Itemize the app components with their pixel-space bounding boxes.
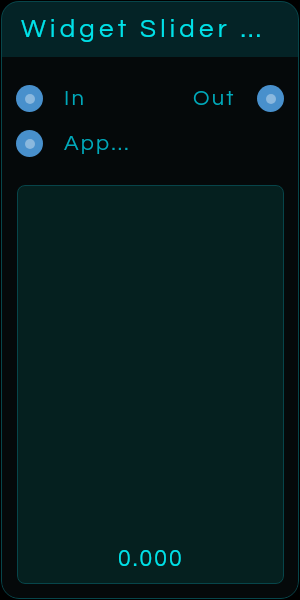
button[interactable]: Out [193, 85, 284, 112]
staticText: Widget Slider … [21, 16, 266, 43]
button[interactable]: In [16, 85, 87, 112]
button[interactable]: Slider value area [17, 185, 284, 584]
staticText: Out [193, 87, 236, 110]
button[interactable]: Widget Slider … [1, 1, 299, 57]
staticText: In [64, 87, 87, 110]
staticText: App… [64, 132, 131, 155]
button[interactable]: App… [16, 130, 131, 157]
staticText: 0.000 [118, 547, 184, 571]
